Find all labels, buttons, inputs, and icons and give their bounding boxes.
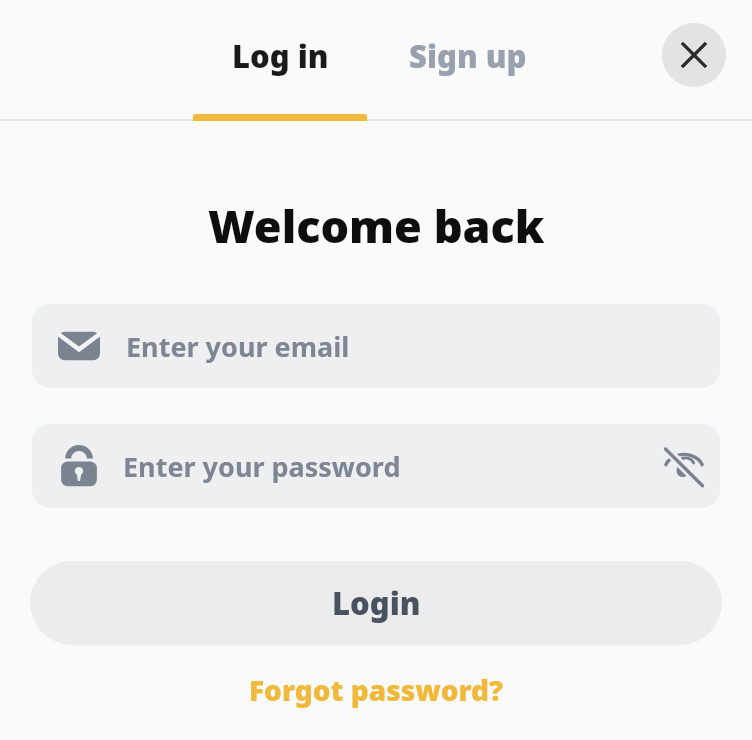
button[interactable]: Enter your email bbox=[32, 304, 720, 388]
button[interactable]: Log in bbox=[186, 0, 374, 112]
button[interactable]: Forgot password? bbox=[249, 671, 504, 709]
button[interactable]: Show password bbox=[652, 434, 716, 498]
staticText: Welcome back bbox=[208, 195, 545, 256]
button[interactable]: Sign up bbox=[374, 0, 562, 112]
button[interactable]: Login bbox=[30, 561, 722, 645]
button[interactable]: Enter your password bbox=[32, 424, 720, 508]
staticText: Enter your email bbox=[126, 328, 350, 365]
staticText: Login bbox=[332, 582, 421, 624]
staticText: Sign up bbox=[409, 35, 527, 77]
staticText: Enter your password bbox=[123, 448, 652, 485]
button[interactable]: Close bbox=[662, 23, 726, 87]
staticText: Forgot password? bbox=[249, 671, 504, 709]
staticText: Log in bbox=[232, 35, 329, 77]
